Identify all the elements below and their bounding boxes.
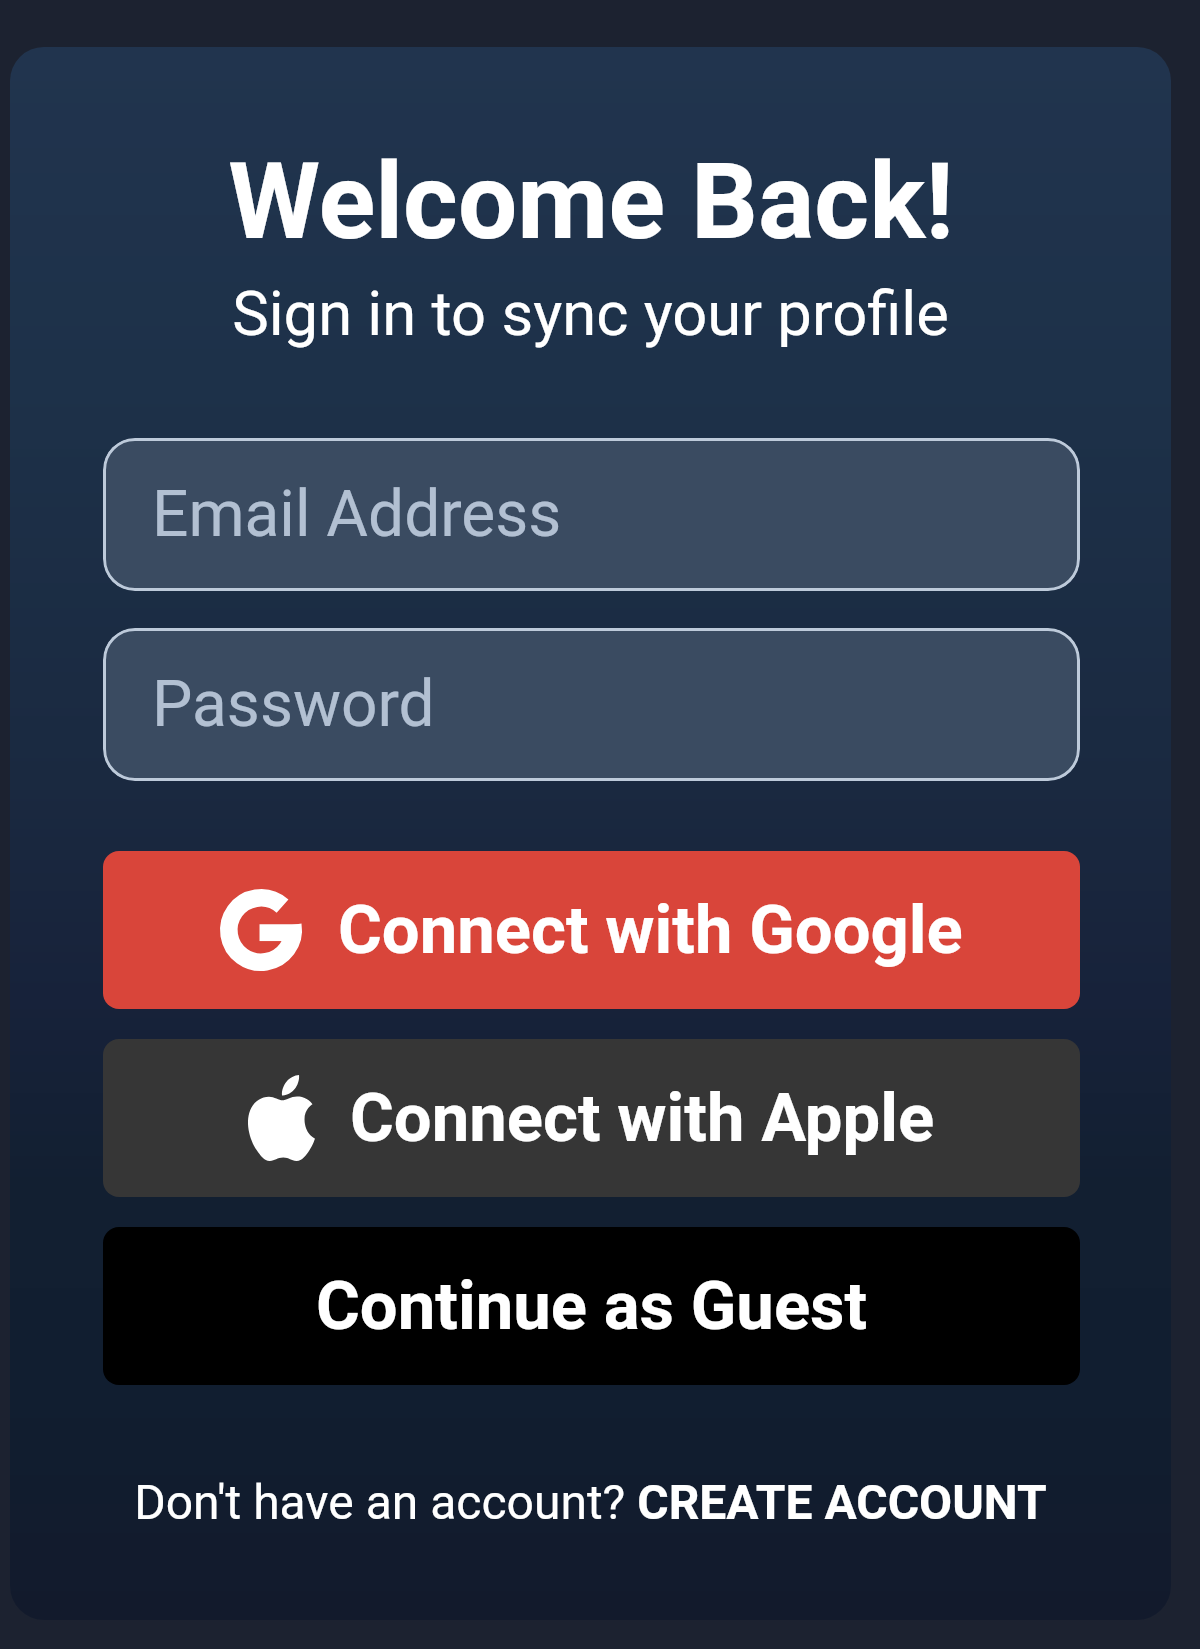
staticText: Continue as Guest <box>316 1267 868 1346</box>
other: Sign in with Google <box>220 889 302 971</box>
other: Sign in with Apple <box>248 1075 315 1161</box>
staticText: Sign in to sync your profile <box>232 278 949 350</box>
staticText: Connect with Google <box>338 891 963 970</box>
button[interactable]: Continue as Guest <box>103 1227 1080 1385</box>
staticText: Welcome Back! <box>228 141 954 264</box>
button[interactable]: Password <box>103 628 1080 781</box>
staticText: Connect with Apple <box>350 1079 935 1158</box>
staticText: Email Address <box>152 477 562 552</box>
button[interactable]: Don't have an account? CREATE ACCOUNT <box>110 1464 1071 1540</box>
button[interactable]: Email Address <box>103 438 1080 591</box>
button[interactable]: Sign in with Apple <box>103 1039 1080 1197</box>
button[interactable]: Sign in with Google <box>103 851 1080 1009</box>
staticText: Password <box>152 667 435 742</box>
